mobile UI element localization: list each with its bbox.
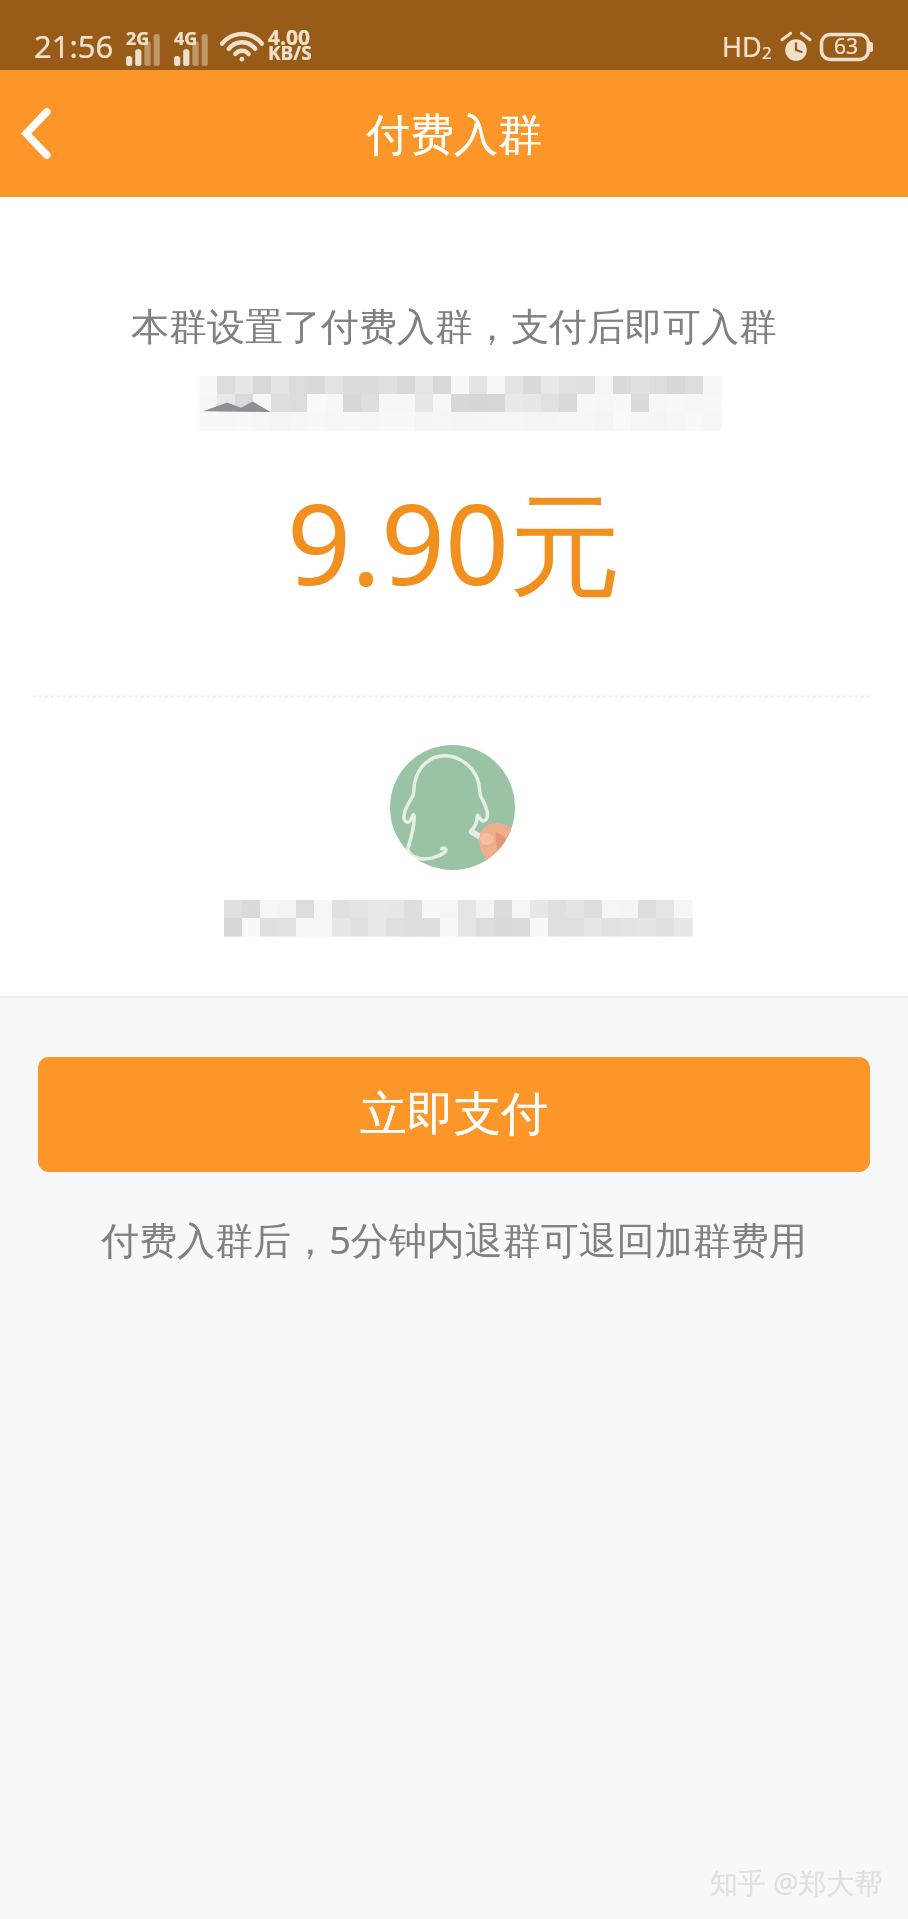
- staticText: 本群设置了付费入群，支付后即可入群: [0, 303, 908, 351]
- staticText: KB/S: [268, 40, 312, 66]
- staticText: 立即支付: [360, 1085, 548, 1144]
- button[interactable]: Back: [0, 70, 100, 197]
- staticText: 21:56: [34, 25, 114, 67]
- staticText: 2G: [126, 26, 150, 51]
- staticText: 63: [834, 32, 859, 61]
- staticText: 付费入群: [366, 108, 542, 163]
- staticText: 9.90元: [0, 465, 908, 618]
- staticText: 2: [762, 41, 772, 64]
- staticText: 知乎 @郑大帮: [710, 1863, 883, 1901]
- button[interactable]: Group profile: [0, 737, 908, 945]
- staticText: 4G: [174, 26, 198, 51]
- staticText: HD: [722, 28, 762, 65]
- staticText: 4.00: [268, 23, 310, 52]
- button[interactable]: 立即支付: [38, 1057, 870, 1172]
- staticText: 付费入群后，5分钟内退群可退回加群费用: [0, 1213, 908, 1265]
